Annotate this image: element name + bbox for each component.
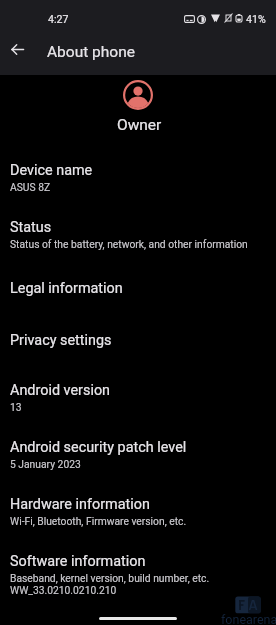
staticText: ASUS 8Z: [10, 181, 51, 193]
staticText: Wi-Fi, Bluetooth, Firmware version, etc.: [10, 515, 187, 527]
staticText: 41%: [246, 13, 266, 25]
staticText: 4:27: [48, 13, 69, 25]
button[interactable]: Legal information: [0, 271, 276, 321]
staticText: Hardware information: [10, 496, 150, 513]
staticText: 13: [10, 401, 22, 413]
staticText: Status of the battery, network, and othe…: [10, 238, 248, 250]
button[interactable]: Device name: [0, 153, 276, 208]
staticText: fonearena: [221, 612, 276, 625]
staticText: 5 January 2023: [10, 458, 81, 470]
button[interactable]: Status: [0, 210, 276, 266]
button[interactable]: Owner: [95, 78, 179, 134]
staticText: Baseband, kernel version, build number, …: [10, 572, 210, 597]
button[interactable]: Software information: [0, 544, 276, 606]
staticText: Android security patch level: [10, 439, 187, 456]
button[interactable]: Android version: [0, 373, 276, 427]
staticText: Android version: [10, 382, 111, 399]
staticText: Device name: [10, 162, 93, 179]
staticText: About phone: [47, 43, 135, 61]
staticText: Privacy settings: [10, 332, 112, 349]
staticText: Status: [10, 219, 52, 236]
staticText: Software information: [10, 553, 146, 570]
button[interactable]: Privacy settings: [0, 323, 276, 371]
button[interactable]: Navigate up: [0, 32, 34, 66]
button[interactable]: Hardware information: [0, 487, 276, 541]
button[interactable]: Android security patch level: [0, 430, 276, 485]
staticText: Owner: [117, 116, 162, 134]
staticText: Legal information: [10, 280, 123, 297]
